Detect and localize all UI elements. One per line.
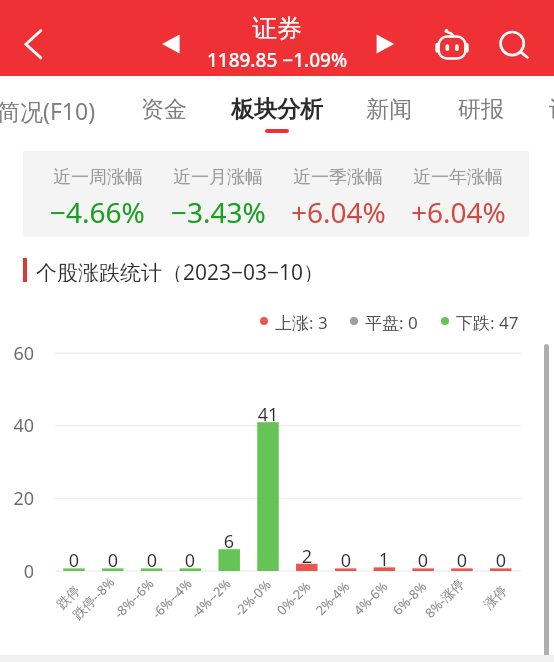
staticText: −4.66% xyxy=(50,193,145,231)
staticText: 4%-6% xyxy=(350,577,391,619)
staticText: -8%--6% xyxy=(110,574,158,622)
staticText: 近一月涨幅 xyxy=(173,166,263,189)
staticText: 下跌: 47 xyxy=(456,311,519,331)
staticText: 2 xyxy=(287,544,327,569)
button[interactable]: 研报 xyxy=(421,76,541,132)
staticText: 新闻 xyxy=(366,95,412,124)
staticText: 0%-2% xyxy=(273,577,314,619)
staticText: 0 xyxy=(481,548,521,573)
button[interactable]: 近一月涨幅 xyxy=(158,151,278,237)
staticText: 跌停--8% xyxy=(68,573,119,623)
staticText: 近一年涨幅 xyxy=(413,166,503,189)
button[interactable]: Next sector xyxy=(364,22,408,66)
staticText: 60 xyxy=(0,341,34,366)
staticText: 0 xyxy=(442,548,482,573)
staticText: 板块分析 xyxy=(231,95,323,124)
button[interactable]: 板块分析 xyxy=(217,76,337,132)
button[interactable]: 上涨: 3 xyxy=(260,311,328,331)
button[interactable]: 近一周涨幅 xyxy=(37,151,158,237)
staticText: 讨论 xyxy=(549,95,554,124)
staticText: 0 xyxy=(0,559,34,584)
staticText: 8%-涨停 xyxy=(421,574,468,622)
staticText: 6 xyxy=(209,529,249,554)
button[interactable]: 平盘: 0 xyxy=(350,311,418,331)
staticText: 资金 xyxy=(141,95,187,124)
staticText: 平盘: 0 xyxy=(365,311,418,331)
button[interactable]: 近一季涨幅 xyxy=(278,151,398,237)
staticText: +6.04% xyxy=(291,193,386,231)
staticText: 证券 xyxy=(0,13,554,44)
staticText: 0 xyxy=(93,548,133,573)
staticText: +6.04% xyxy=(411,193,506,231)
staticText: 近一季涨幅 xyxy=(293,166,383,189)
staticText: 上涨: 3 xyxy=(275,311,328,331)
staticText: 0 xyxy=(403,548,443,573)
staticText: -4%--2% xyxy=(187,574,235,622)
staticText: 跌停 xyxy=(53,582,83,612)
staticText: 1 xyxy=(364,547,404,572)
staticText: 简况(F10) xyxy=(0,95,96,126)
staticText: 1189.85 −1.09% xyxy=(0,47,554,73)
staticText: -2%-0% xyxy=(230,576,275,620)
button[interactable]: 下跌: 47 xyxy=(441,311,519,331)
staticText: 41 xyxy=(248,402,288,427)
staticText: -6%--4% xyxy=(148,574,196,622)
button[interactable]: 新闻 xyxy=(329,76,449,132)
staticText: 0 xyxy=(326,548,366,573)
button[interactable]: 近一年涨幅 xyxy=(398,151,518,237)
staticText: 6%-8% xyxy=(389,577,430,619)
staticText: 40 xyxy=(0,413,34,438)
button[interactable]: 资金 xyxy=(104,76,224,132)
staticText: 0 xyxy=(132,548,172,573)
button[interactable]: AI assistant xyxy=(428,20,476,68)
button[interactable]: Search xyxy=(488,20,536,68)
staticText: 个股涨跌统计（2023−03−10） xyxy=(36,258,325,282)
staticText: 近一周涨幅 xyxy=(53,166,143,189)
staticText: 研报 xyxy=(458,95,504,124)
button[interactable]: 讨论 xyxy=(512,76,554,132)
button[interactable]: Back xyxy=(9,20,57,68)
staticText: 涨停 xyxy=(480,582,510,612)
staticText: 0 xyxy=(54,548,94,573)
staticText: 20 xyxy=(0,486,34,511)
staticText: −3.43% xyxy=(171,193,266,231)
staticText: 0 xyxy=(170,548,210,573)
staticText: 2%-4% xyxy=(312,577,353,619)
button[interactable]: 简况(F10) xyxy=(0,76,106,132)
button[interactable]: Previous sector xyxy=(150,22,194,66)
